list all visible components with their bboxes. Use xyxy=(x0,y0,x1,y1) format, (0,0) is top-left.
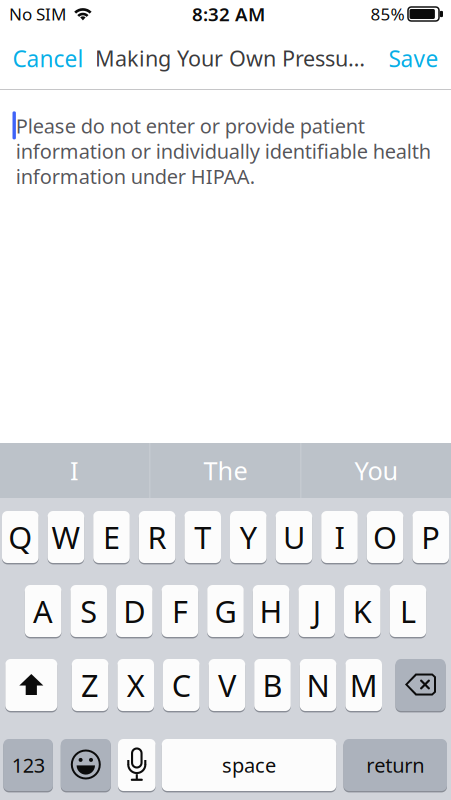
staticText: H xyxy=(260,590,283,632)
staticText: Please do not enter or provide patient i… xyxy=(16,113,431,189)
staticText: Cancel xyxy=(12,43,83,74)
button[interactable]: The xyxy=(150,443,300,498)
button[interactable]: O xyxy=(367,511,403,563)
button[interactable]: E xyxy=(93,511,130,563)
staticText: space xyxy=(222,751,276,779)
staticText: N xyxy=(307,664,330,706)
button[interactable]: Delete xyxy=(395,659,445,711)
staticText: T xyxy=(194,516,211,558)
button[interactable]: Q xyxy=(2,511,39,563)
button[interactable]: J xyxy=(298,585,335,637)
staticText: U xyxy=(283,516,305,558)
button[interactable]: X xyxy=(117,659,154,711)
button[interactable]: V xyxy=(209,659,245,711)
button[interactable]: K xyxy=(344,585,381,637)
staticText: F xyxy=(172,590,188,632)
staticText: R xyxy=(148,516,167,558)
button[interactable]: M xyxy=(345,659,382,711)
staticText: Save xyxy=(388,43,438,74)
button[interactable]: Making Your Own Pressu… xyxy=(95,33,365,89)
staticText: I xyxy=(334,516,344,558)
button[interactable]: H xyxy=(253,585,289,637)
staticText: V xyxy=(218,664,236,706)
button[interactable]: I xyxy=(321,511,358,563)
button[interactable]: B xyxy=(254,659,291,711)
staticText: 123 xyxy=(12,751,45,779)
staticText: E xyxy=(103,516,120,558)
button[interactable]: C xyxy=(163,659,200,711)
staticText: M xyxy=(350,664,378,706)
button[interactable]: R xyxy=(139,511,175,563)
button[interactable]: D xyxy=(116,585,153,637)
button[interactable]: N xyxy=(300,659,336,711)
staticText: The xyxy=(203,453,247,488)
staticText: You xyxy=(354,453,398,488)
staticText: J xyxy=(313,590,321,632)
staticText: D xyxy=(123,590,145,632)
staticText: A xyxy=(33,590,53,632)
staticText: I xyxy=(70,453,79,488)
button[interactable]: Shift xyxy=(5,659,57,711)
button[interactable]: I xyxy=(0,443,149,498)
button[interactable]: Z xyxy=(72,659,108,711)
staticText: return xyxy=(366,751,424,779)
button[interactable]: W xyxy=(48,511,84,563)
staticText: K xyxy=(353,590,372,632)
staticText: X xyxy=(127,664,145,706)
staticText: Q xyxy=(8,516,32,558)
button[interactable]: P xyxy=(412,511,449,563)
button[interactable]: Cancel xyxy=(0,33,96,89)
button[interactable]: L xyxy=(390,585,426,637)
staticText: P xyxy=(421,516,440,558)
staticText: C xyxy=(172,664,191,706)
staticText: 85% xyxy=(370,2,404,26)
button[interactable]: You xyxy=(301,443,451,498)
button[interactable]: Dictation xyxy=(118,739,156,791)
staticText: Y xyxy=(240,516,257,558)
button[interactable]: 123 xyxy=(3,739,53,791)
button[interactable]: F xyxy=(162,585,198,637)
button[interactable]: G xyxy=(207,585,244,637)
staticText: Making Your Own Pressu… xyxy=(95,43,365,73)
staticText: O xyxy=(373,516,397,558)
button[interactable]: space xyxy=(162,739,336,791)
staticText: Z xyxy=(81,664,99,706)
button[interactable]: U xyxy=(276,511,312,563)
staticText: L xyxy=(400,590,416,632)
button[interactable]: S xyxy=(70,585,107,637)
button[interactable]: Save xyxy=(377,33,450,89)
button[interactable]: A xyxy=(25,585,61,637)
staticText: S xyxy=(80,590,97,632)
button[interactable]: Emoji xyxy=(61,739,111,791)
staticText: W xyxy=(51,516,80,558)
staticText: No SIM xyxy=(9,2,66,26)
button[interactable]: T xyxy=(184,511,221,563)
staticText: G xyxy=(214,590,236,632)
button[interactable]: return xyxy=(343,739,447,791)
staticText: 8:32 AM xyxy=(192,1,265,27)
staticText: B xyxy=(262,664,282,706)
button[interactable]: Y xyxy=(230,511,267,563)
